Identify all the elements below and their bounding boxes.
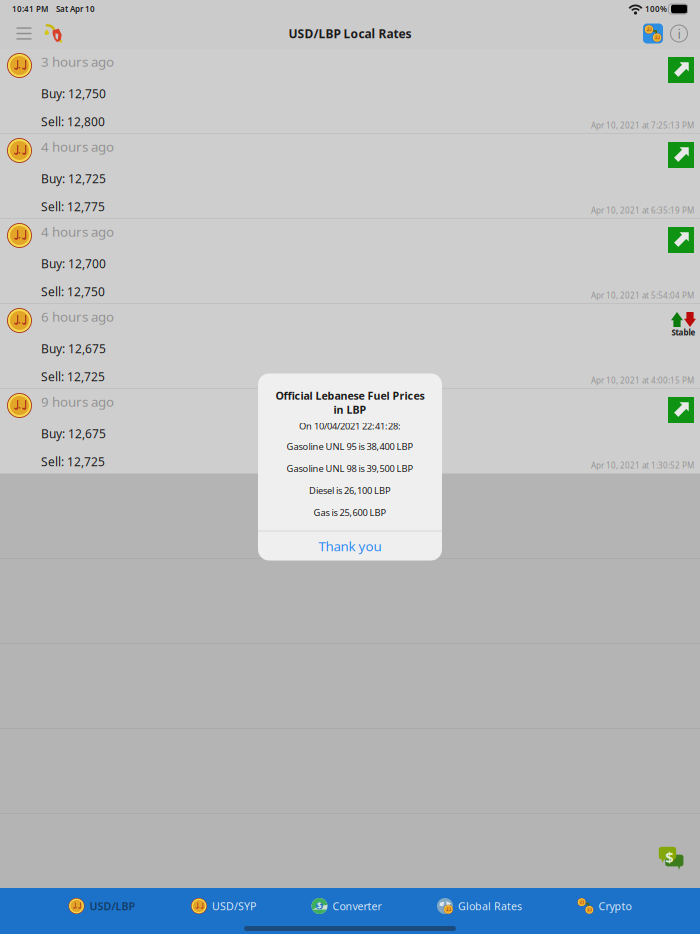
staticText: Crypto bbox=[598, 899, 631, 913]
staticText: Apr 10, 2021 at 7:25:13 PM bbox=[591, 120, 694, 131]
staticText: Buy: 12,725 bbox=[41, 170, 106, 186]
staticText: $ bbox=[317, 901, 322, 911]
button[interactable]: Chat bbox=[656, 844, 684, 872]
staticText: Sat Apr 10 bbox=[56, 4, 95, 14]
button[interactable]: $ bbox=[311, 886, 381, 926]
button[interactable]: 4 hours ago bbox=[0, 219, 700, 304]
staticText: 9 hours ago bbox=[41, 393, 114, 410]
staticText: i bbox=[677, 25, 680, 42]
button[interactable]: USD/LBP bbox=[68, 886, 135, 926]
staticText: Sell: 12,725 bbox=[41, 368, 105, 384]
staticText: Sell: 12,775 bbox=[41, 198, 105, 214]
staticText: Sell: 12,725 bbox=[41, 453, 105, 469]
staticText: Diesel is 26,100 LBP bbox=[309, 484, 391, 497]
staticText: Thank you bbox=[318, 537, 381, 555]
button[interactable]: 6 hours ago bbox=[0, 304, 700, 389]
staticText: Sell: 12,800 bbox=[41, 113, 105, 129]
button[interactable]: 9 hours ago bbox=[0, 389, 700, 474]
button[interactable]: 3 hours ago bbox=[0, 49, 700, 134]
staticText: 4 hours ago bbox=[41, 223, 114, 240]
staticText: Gas is 25,600 LBP bbox=[313, 506, 386, 519]
button[interactable]: Crypto bbox=[577, 886, 631, 926]
button[interactable]: Thank you bbox=[258, 531, 442, 560]
staticText: On 10/04/2021 22:41:28: bbox=[299, 420, 401, 432]
staticText: Buy: 12,675 bbox=[41, 340, 106, 356]
staticText: 4 hours ago bbox=[41, 138, 114, 155]
staticText: 100% bbox=[645, 4, 667, 14]
staticText: USD/LBP Local Rates bbox=[288, 25, 411, 41]
staticText: Converter bbox=[332, 899, 381, 913]
staticText: Apr 10, 2021 at 4:00:15 PM bbox=[591, 375, 694, 386]
staticText: Gasoline UNL 98 is 39,500 LBP bbox=[286, 462, 413, 475]
staticText: Apr 10, 2021 at 6:35:19 PM bbox=[591, 205, 694, 216]
staticText: $ bbox=[665, 847, 673, 867]
button[interactable]: Fuel prices bbox=[38, 19, 70, 47]
button[interactable]: Menu bbox=[10, 19, 38, 47]
staticText: 3 hours ago bbox=[41, 53, 114, 70]
button[interactable]: Converter bbox=[640, 19, 666, 47]
staticText: Stable bbox=[671, 327, 695, 338]
staticText: Buy: 12,700 bbox=[41, 255, 106, 271]
staticText: Buy: 12,675 bbox=[41, 425, 106, 441]
staticText: Apr 10, 2021 at 5:54:04 PM bbox=[591, 290, 694, 301]
staticText: Apr 10, 2021 at 1:30:52 PM bbox=[591, 460, 694, 471]
staticText: Global Rates bbox=[458, 899, 522, 913]
staticText: Sell: 12,750 bbox=[41, 283, 105, 299]
staticText: 6 hours ago bbox=[41, 308, 114, 325]
button[interactable]: USD/SYP bbox=[191, 886, 256, 926]
button[interactable]: Info bbox=[666, 19, 692, 47]
staticText: Buy: 12,750 bbox=[41, 85, 106, 101]
staticText: USD/SYP bbox=[212, 899, 256, 913]
button[interactable]: 4 hours ago bbox=[0, 134, 700, 219]
staticText: USD/LBP bbox=[89, 899, 135, 913]
button[interactable]: Global Rates bbox=[437, 886, 522, 926]
staticText: Gasoline UNL 95 is 38,400 LBP bbox=[286, 440, 413, 453]
staticText: in LBP bbox=[333, 402, 366, 417]
staticText: 10:41 PM bbox=[12, 4, 48, 14]
staticText: Official Lebanese Fuel Prices bbox=[275, 388, 424, 403]
